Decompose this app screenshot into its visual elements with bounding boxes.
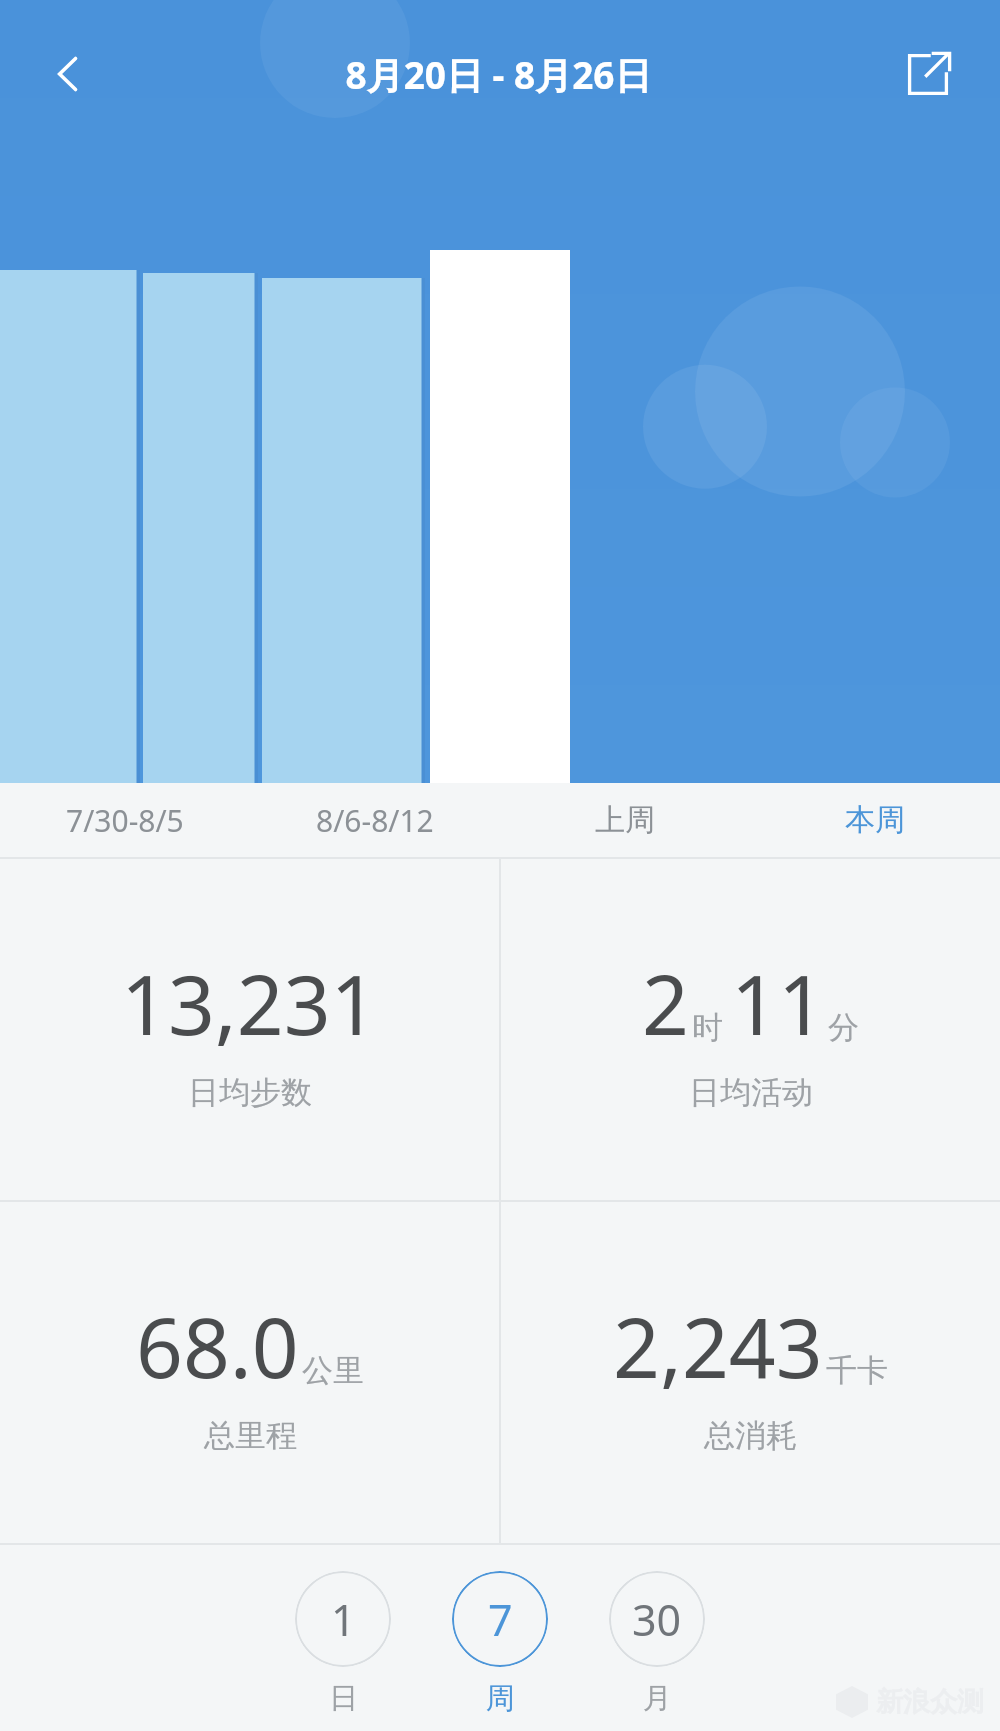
staticText: 13,231 [121, 947, 378, 1059]
staticText: 日 [329, 1680, 358, 1717]
button[interactable]: Share [888, 34, 968, 114]
staticText: 时 [692, 1008, 723, 1047]
button[interactable]: 7 [452, 1571, 548, 1717]
button[interactable]: 2,243 [501, 1202, 1000, 1543]
button[interactable]: 本周 [750, 783, 1000, 857]
button[interactable]: Back [28, 34, 108, 114]
staticText: 7 [488, 1590, 513, 1649]
staticText: 总消耗 [704, 1416, 797, 1455]
button[interactable]: 7/30-8/5 [0, 783, 250, 857]
staticText: 新浪众测 [876, 1685, 984, 1719]
staticText: 公里 [302, 1351, 364, 1390]
staticText: 11 [731, 947, 825, 1059]
button[interactable]: 8/6-8/12 [250, 783, 500, 857]
staticText: 7/30-8/5 [66, 800, 184, 841]
staticText: 68.0 [136, 1290, 299, 1402]
staticText: 分 [828, 1008, 859, 1047]
staticText: 2 [642, 947, 689, 1059]
staticText: 周 [486, 1680, 515, 1717]
staticText: 本周 [845, 801, 905, 839]
button[interactable]: 2 [501, 859, 1000, 1200]
staticText: 1 [331, 1590, 356, 1649]
staticText: 8月20日 - 8月26日 [345, 49, 652, 100]
staticText: 总里程 [204, 1416, 297, 1455]
button[interactable]: 1 [295, 1571, 391, 1717]
button[interactable]: 30 [609, 1571, 705, 1717]
button[interactable]: 13,231 [0, 859, 499, 1200]
staticText: 8/6-8/12 [316, 800, 434, 841]
staticText: 日均步数 [188, 1073, 312, 1112]
staticText: 30 [632, 1590, 682, 1649]
button[interactable]: 68.0 [0, 1202, 499, 1543]
staticText: 上周 [595, 801, 655, 839]
button[interactable]: 上周 [500, 783, 750, 857]
staticText: 2,243 [613, 1290, 823, 1402]
staticText: 千卡 [826, 1351, 888, 1390]
staticText: 月 [643, 1680, 672, 1717]
staticText: 日均活动 [689, 1073, 813, 1112]
